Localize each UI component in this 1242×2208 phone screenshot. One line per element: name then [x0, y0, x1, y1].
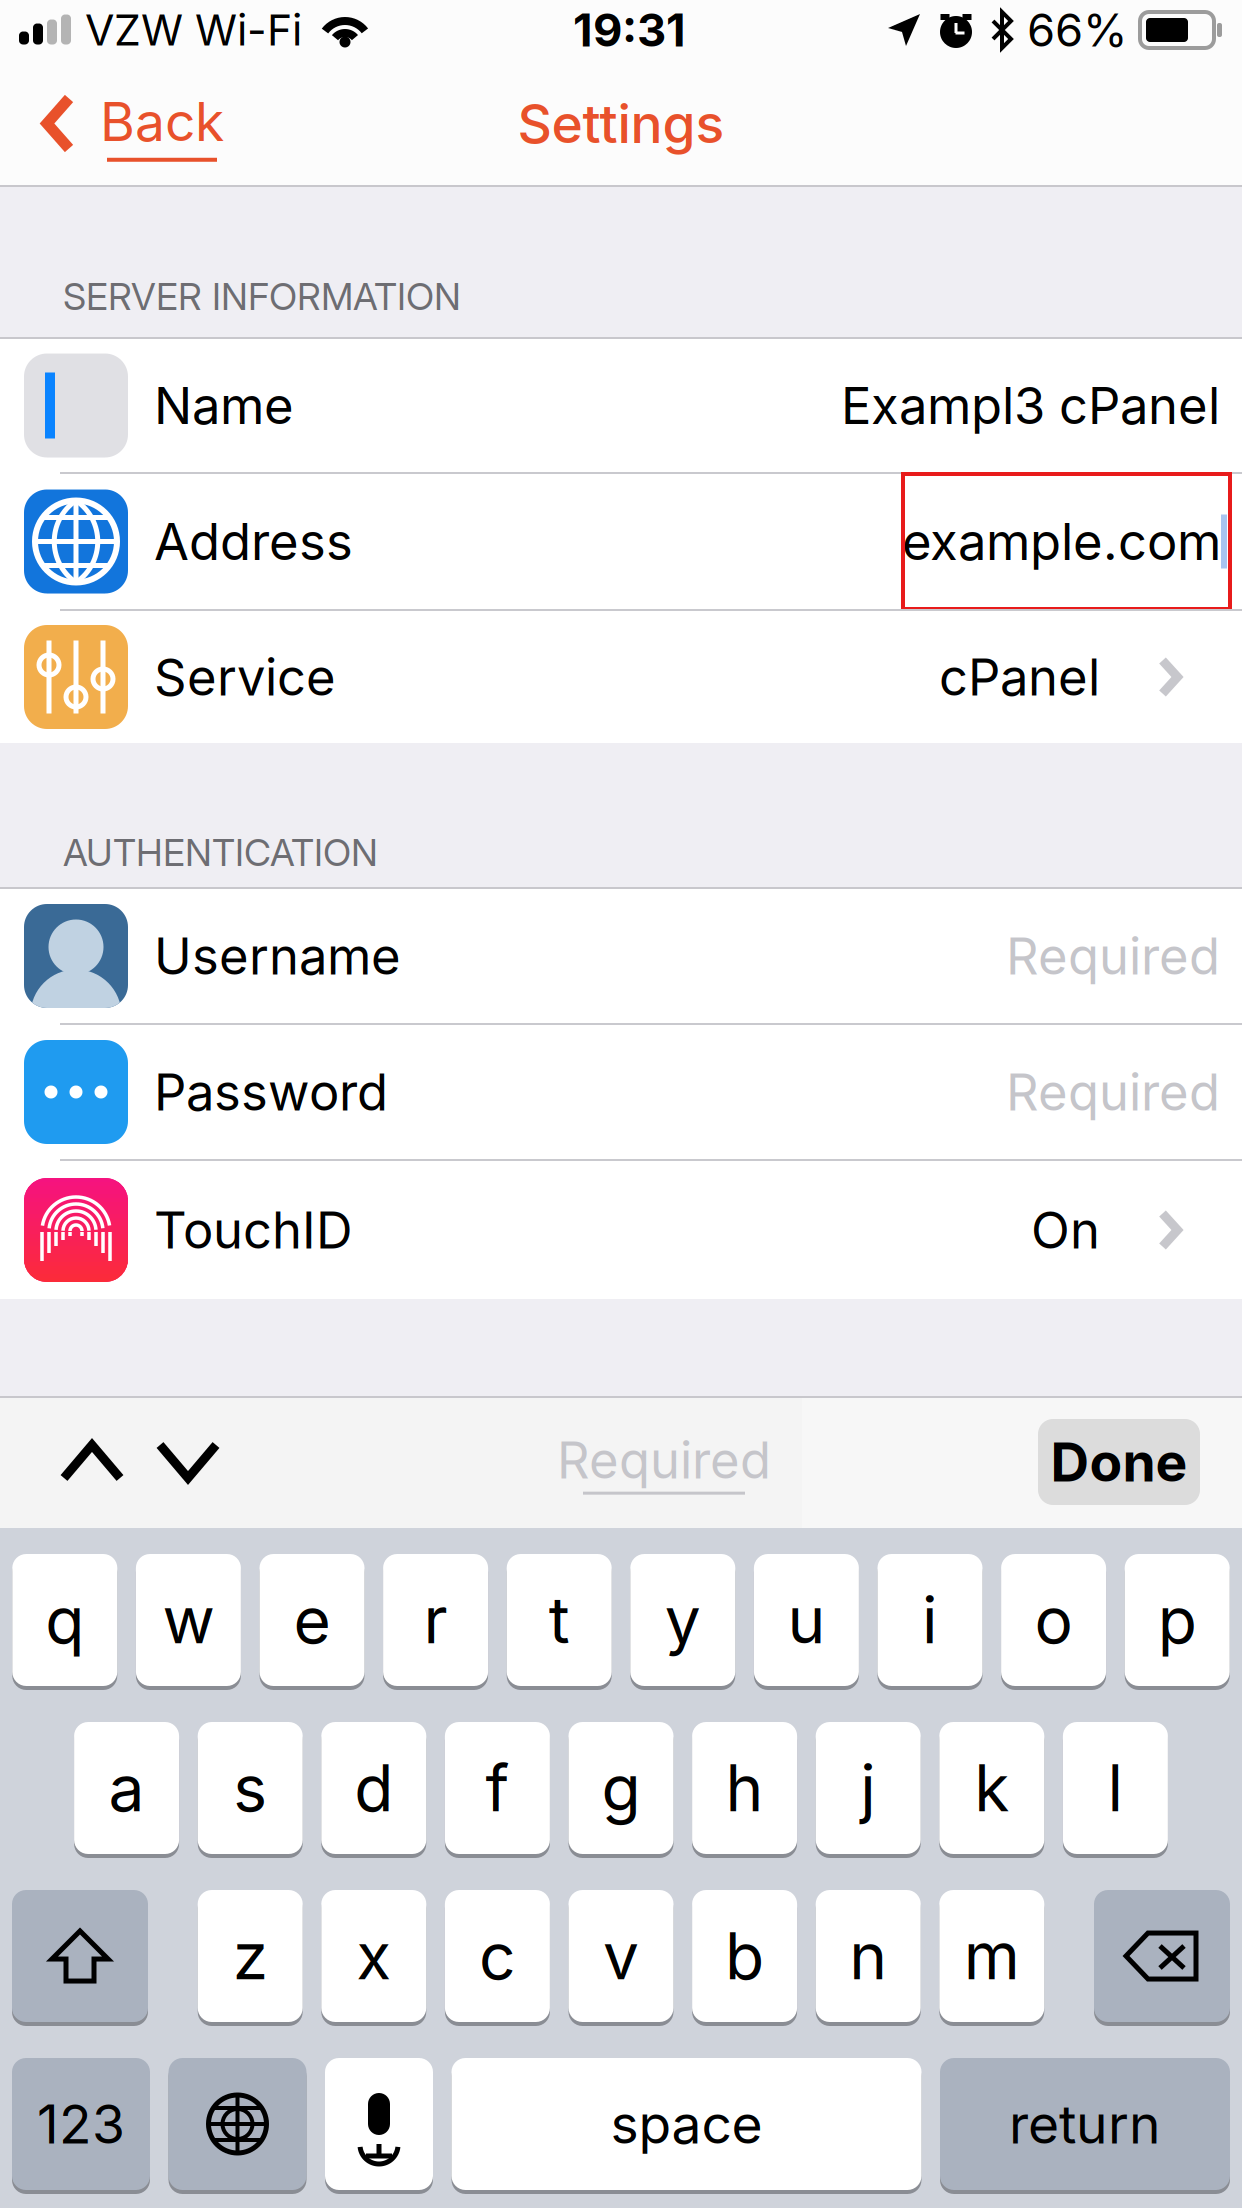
staticText: Required	[557, 1429, 771, 1491]
staticText: example.com	[902, 511, 1221, 572]
button[interactable]: l	[1063, 1720, 1168, 1856]
button[interactable]: TouchID	[0, 1161, 1242, 1299]
staticText: cPanel	[939, 646, 1100, 708]
button[interactable]: t	[507, 1552, 612, 1688]
staticText: 123	[37, 2092, 125, 2156]
button[interactable]: Previous field	[0, 1396, 124, 1528]
staticText: Service	[154, 646, 336, 708]
button[interactable]: d	[321, 1720, 426, 1856]
button[interactable]: Back	[0, 60, 224, 187]
button[interactable]: u	[754, 1552, 859, 1688]
staticText: n	[849, 1917, 887, 1995]
button[interactable]: j	[816, 1720, 921, 1856]
button[interactable]: Password	[0, 1025, 1242, 1159]
button[interactable]	[12, 1888, 148, 2024]
staticText: Required	[1006, 925, 1220, 987]
button[interactable]: a	[74, 1720, 179, 1856]
button[interactable]: v	[568, 1888, 673, 2024]
button[interactable]: c	[445, 1888, 550, 2024]
button[interactable]	[168, 2056, 306, 2192]
button[interactable]: y	[630, 1552, 735, 1688]
staticText: k	[974, 1749, 1009, 1827]
staticText: w	[162, 1581, 214, 1659]
staticText: r	[424, 1581, 448, 1659]
staticText: i	[922, 1581, 938, 1659]
staticText: return	[1009, 2092, 1161, 2156]
staticText: AUTHENTICATION	[63, 830, 378, 875]
staticText: y	[665, 1581, 701, 1659]
staticText: s	[233, 1749, 267, 1827]
button[interactable]: Address	[0, 474, 1242, 609]
button[interactable]: g	[568, 1720, 673, 1856]
button[interactable]: p	[1125, 1552, 1230, 1688]
button[interactable]: return	[940, 2056, 1230, 2192]
button[interactable]: z	[198, 1888, 303, 2024]
button[interactable]: Name	[0, 339, 1242, 472]
button[interactable]: Service	[0, 611, 1242, 743]
staticText: Username	[154, 925, 401, 987]
button[interactable]: b	[692, 1888, 797, 2024]
staticText: SERVER INFORMATION	[63, 274, 461, 319]
staticText: Required	[1006, 1061, 1220, 1123]
button[interactable]	[1094, 1888, 1230, 2024]
button[interactable]: Done	[1038, 1419, 1242, 1505]
staticText: l	[1107, 1749, 1123, 1827]
button[interactable]: r	[383, 1552, 488, 1688]
staticText: g	[601, 1749, 640, 1827]
staticText: o	[1035, 1581, 1073, 1659]
button[interactable]: m	[939, 1888, 1044, 2024]
button[interactable]: n	[816, 1888, 921, 2024]
button[interactable]: i	[877, 1552, 982, 1688]
button[interactable]: x	[321, 1888, 426, 2024]
staticText: m	[964, 1917, 1020, 1995]
staticText: Done	[1050, 1430, 1187, 1494]
button[interactable]: h	[692, 1720, 797, 1856]
staticText: z	[233, 1917, 268, 1995]
staticText: v	[603, 1917, 639, 1995]
staticText: u	[787, 1581, 825, 1659]
button[interactable]: f	[445, 1720, 550, 1856]
button[interactable]: Username	[0, 889, 1242, 1023]
staticText: e	[293, 1581, 330, 1659]
staticText: t	[549, 1581, 570, 1659]
staticText: j	[860, 1749, 876, 1827]
staticText: h	[726, 1749, 764, 1827]
staticText: VZW Wi-Fi	[85, 4, 302, 56]
staticText: a	[109, 1749, 145, 1827]
staticText: Settings	[517, 91, 724, 156]
staticText: TouchID	[154, 1199, 353, 1261]
staticText: 19:31	[573, 3, 686, 57]
staticText: Address	[154, 511, 353, 572]
button[interactable]: s	[198, 1720, 303, 1856]
staticText: Password	[154, 1061, 388, 1123]
button[interactable]: k	[939, 1720, 1044, 1856]
button[interactable]: w	[136, 1552, 241, 1688]
staticText: On	[1031, 1199, 1100, 1261]
staticText: q	[45, 1581, 84, 1659]
staticText: c	[479, 1917, 516, 1995]
staticText: Exampl3 cPanel	[841, 375, 1220, 436]
staticText: f	[485, 1749, 509, 1827]
button[interactable]: Next field	[124, 1396, 220, 1528]
button[interactable]: e	[259, 1552, 364, 1688]
button[interactable]: 123	[12, 2056, 150, 2192]
button[interactable]: o	[1001, 1552, 1106, 1688]
staticText: x	[356, 1917, 391, 1995]
staticText: Back	[100, 89, 224, 154]
staticText: p	[1158, 1581, 1197, 1659]
staticText: d	[354, 1749, 393, 1827]
button[interactable]: space	[451, 2056, 921, 2192]
staticText: b	[725, 1917, 764, 1995]
staticText: 66%	[1027, 3, 1128, 57]
button[interactable]	[325, 2056, 433, 2192]
staticText: space	[610, 2092, 762, 2156]
staticText: Name	[154, 375, 294, 436]
button[interactable]: q	[12, 1552, 117, 1688]
